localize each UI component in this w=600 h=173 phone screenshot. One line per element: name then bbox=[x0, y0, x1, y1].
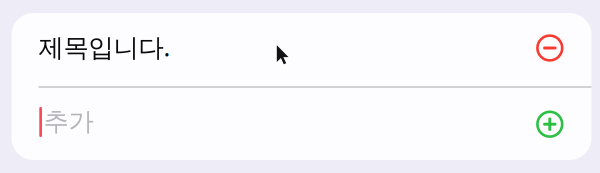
button[interactable]: Remove item bbox=[528, 26, 572, 70]
button[interactable]: Add item bbox=[528, 102, 572, 146]
staticText: 추가 bbox=[44, 106, 94, 137]
button[interactable]: 추가 bbox=[39, 94, 519, 150]
button[interactable]: 제목입니다. bbox=[38, 19, 518, 75]
staticText: 제목입니다. bbox=[38, 30, 170, 63]
